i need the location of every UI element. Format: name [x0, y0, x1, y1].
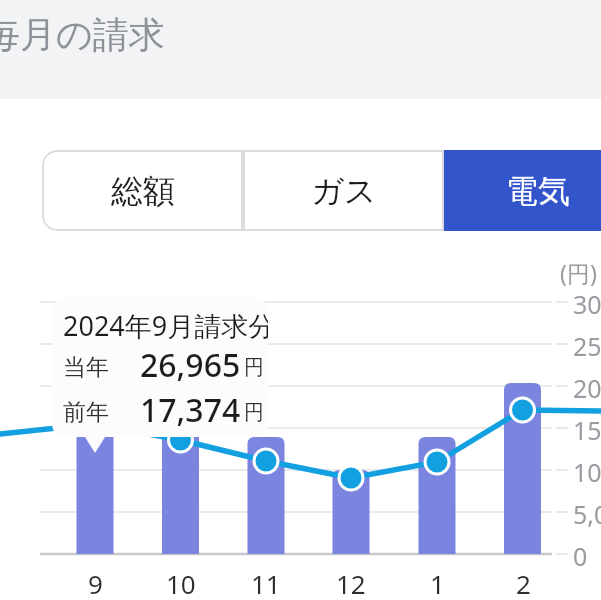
button[interactable]: 2024年9月請求分: [52, 297, 268, 437]
staticText: 電気: [506, 171, 570, 211]
staticText: 10,0: [573, 455, 601, 489]
staticText: 0: [573, 539, 588, 573]
staticText: 総額: [111, 171, 175, 211]
staticText: 2: [516, 566, 531, 600]
staticText: 25,0: [573, 329, 601, 363]
staticText: 前年: [63, 398, 109, 427]
staticText: (円): [560, 257, 597, 288]
staticText: 2024年9月請求分: [63, 307, 268, 344]
staticText: 1: [430, 566, 445, 600]
staticText: 円: [244, 400, 264, 425]
staticText: 26,965: [140, 343, 241, 387]
staticText: 当年: [63, 353, 109, 382]
staticText: 15,0: [573, 413, 601, 447]
staticText: 9: [88, 566, 103, 600]
button[interactable]: ガス: [243, 150, 444, 231]
staticText: 17,374: [140, 388, 241, 432]
staticText: 20,0: [573, 371, 601, 405]
staticText: 12: [336, 566, 366, 600]
staticText: 10: [166, 566, 196, 600]
button[interactable]: 総額: [42, 150, 243, 231]
button[interactable]: 電気: [444, 150, 601, 231]
staticText: 毎月の請求: [0, 12, 165, 57]
staticText: 5,00: [573, 497, 601, 531]
staticText: 30,0: [573, 287, 601, 321]
staticText: ガス: [311, 171, 377, 211]
staticText: 円: [244, 355, 264, 380]
staticText: 11: [251, 566, 281, 600]
